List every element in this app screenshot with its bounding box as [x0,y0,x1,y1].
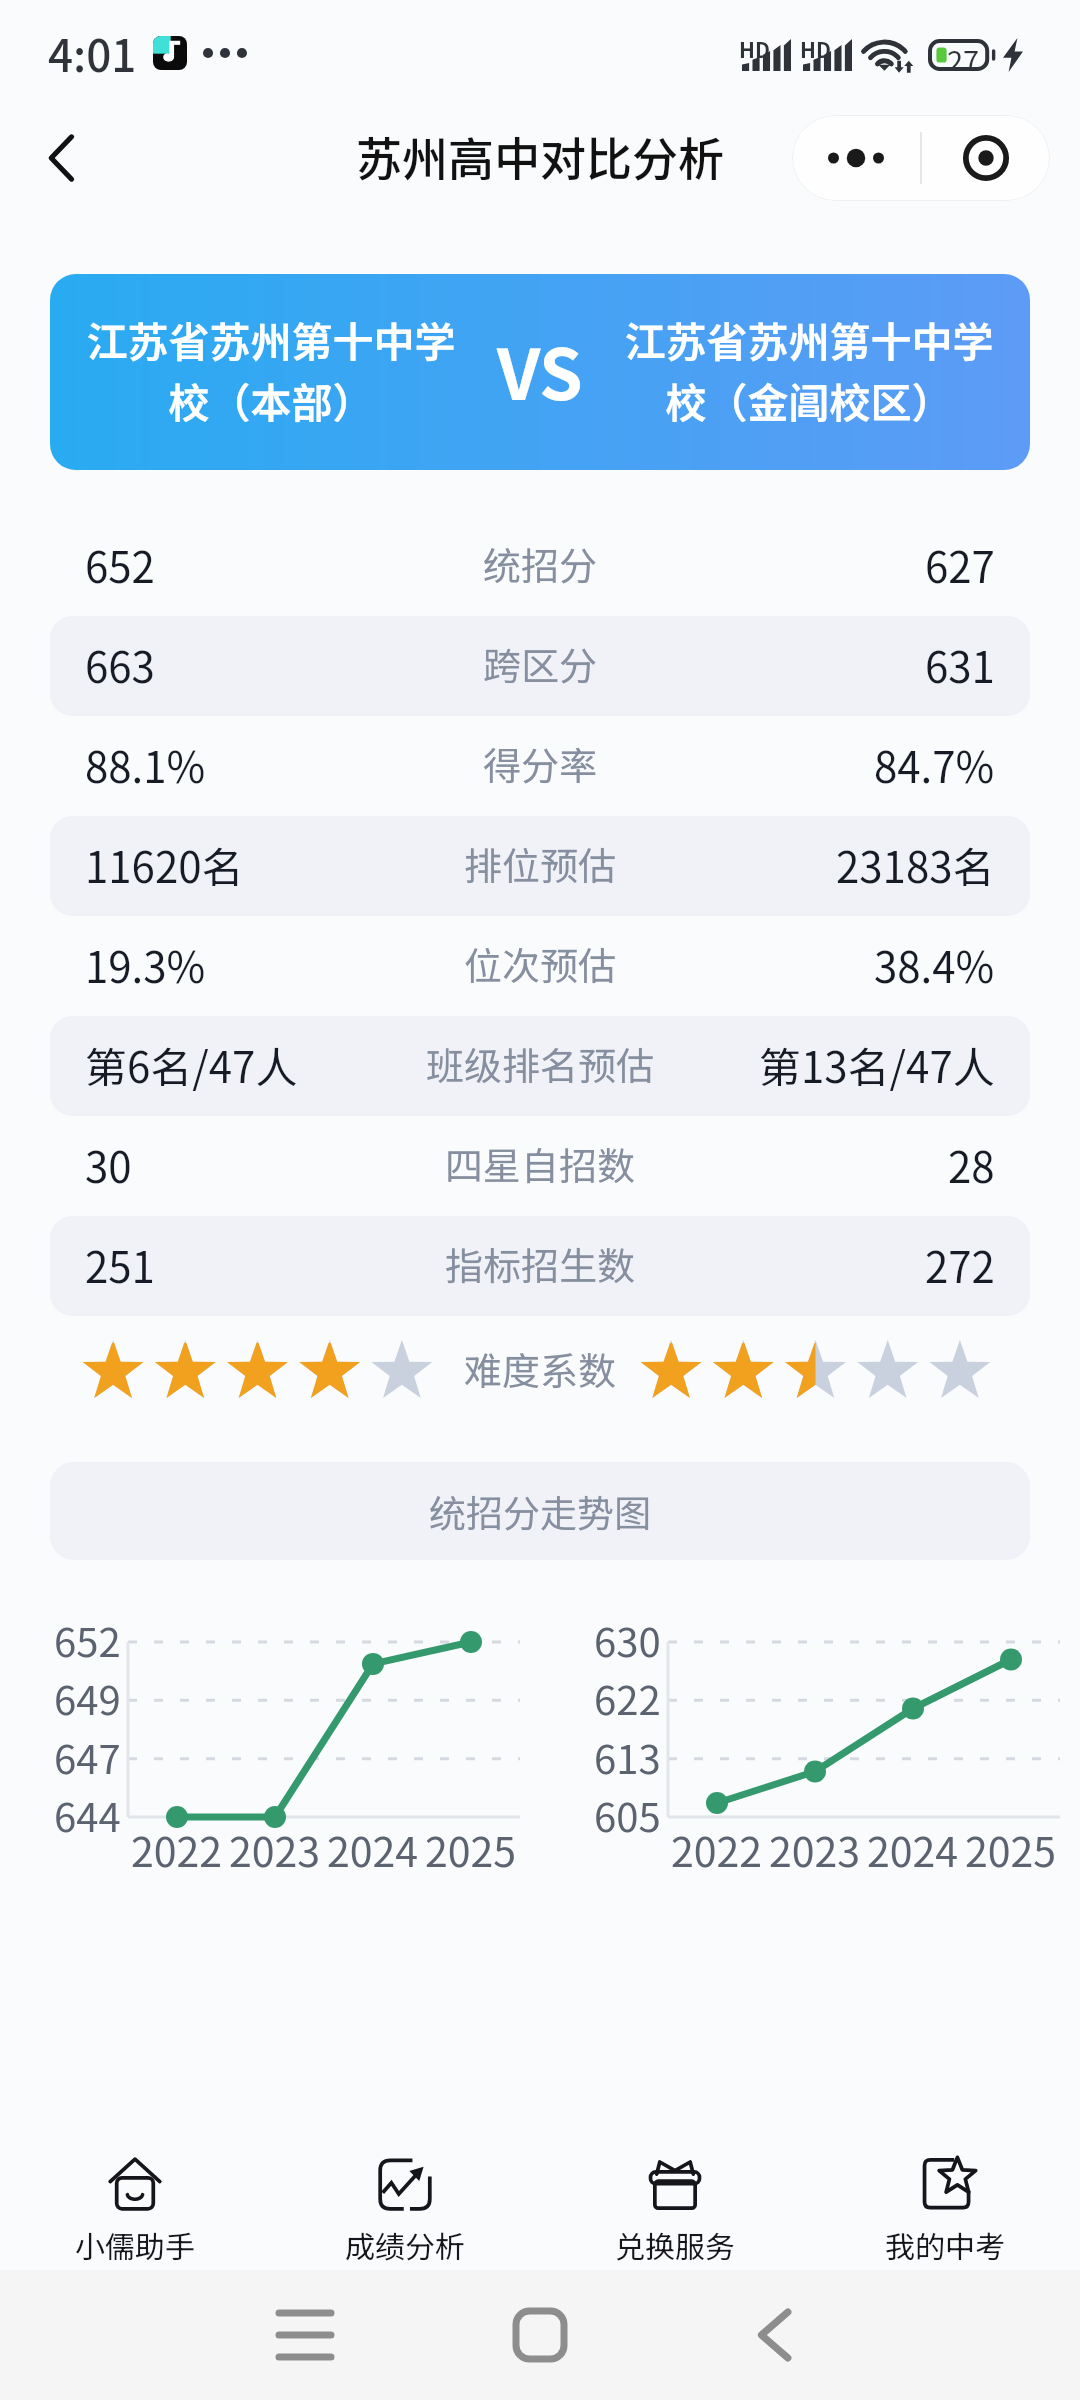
staticText: VS [497,319,583,420]
button[interactable]: 成绩分析 [270,2130,540,2270]
staticText: 19.3% [85,934,206,995]
staticText: 2024 [327,1819,419,1878]
staticText: 4:01 [48,21,137,85]
staticText: 663 [85,634,155,695]
button[interactable]: 第6名/47人 [50,1016,1030,1116]
staticText: 小儒助手 [75,2223,195,2266]
staticText: 272 [925,1234,995,1295]
staticText: 班级排名预估 [426,1036,655,1091]
staticText: 四星自招数 [445,1136,636,1191]
staticText: 630 [594,1611,661,1665]
button[interactable]: 19.3% [50,916,1030,1016]
staticText: 指标招生数 [445,1236,636,1291]
staticText: 2023 [769,1819,861,1878]
staticText: 得分率 [483,736,598,791]
staticText: 652 [54,1611,121,1665]
staticText: 统招分 [483,536,598,591]
button[interactable]: More options [792,115,1050,201]
button[interactable]: 兑换服务 [540,2130,810,2270]
staticText: 38.4% [874,934,995,995]
button[interactable]: 我的中考 [810,2130,1080,2270]
button[interactable]: Home [497,2292,583,2378]
staticText: 2022 [131,1819,223,1878]
staticText: 2025 [965,1819,1057,1878]
staticText: 江苏省苏州第十中学校（本部） [68,309,474,430]
button[interactable]: Recents [262,2292,348,2378]
staticText: 江苏省苏州第十中学校（金阊校区） [606,309,1012,430]
staticText: 11620名 [85,834,244,895]
staticText: 23183名 [836,834,995,895]
staticText: 27 [947,38,980,70]
staticText: 622 [594,1669,661,1723]
staticText: 613 [594,1728,661,1782]
staticText: 跨区分 [483,636,598,691]
staticText: 652 [85,534,155,595]
button[interactable]: Back [26,122,98,194]
staticText: 统招分走势图 [429,1484,651,1538]
staticText: 成绩分析 [345,2223,465,2266]
staticText: 2025 [425,1819,517,1878]
staticText: 2023 [229,1819,321,1878]
staticText: 627 [925,534,995,595]
button[interactable]: 江苏省苏州第十中学校（本部） [50,274,1030,470]
button[interactable]: 统招分走势图 [50,1462,1030,1560]
button[interactable]: Back [732,2292,818,2378]
staticText: 251 [85,1234,155,1295]
staticText: 排位预估 [464,836,617,891]
staticText: 第6名/47人 [85,1034,298,1095]
staticText: 84.7% [874,734,995,795]
button[interactable]: 652 [50,516,1030,616]
button[interactable]: 小儒助手 [0,2130,270,2270]
staticText: 我的中考 [885,2223,1005,2266]
staticText: 644 [54,1786,121,1840]
staticText: 2022 [671,1819,763,1878]
button[interactable]: 11620名 [50,816,1030,916]
staticText: 苏州高中对比分析 [356,123,724,190]
staticText: 605 [594,1786,661,1840]
button[interactable]: 251 [50,1216,1030,1316]
staticText: 第13名/47人 [759,1034,995,1095]
staticText: 位次预估 [464,936,617,991]
button[interactable]: 88.1% [50,716,1030,816]
staticText: 兑换服务 [615,2223,735,2266]
staticText: 2024 [867,1819,959,1878]
button[interactable]: 663 [50,616,1030,716]
staticText: 647 [54,1728,121,1782]
staticText: 631 [925,634,995,695]
button[interactable]: 30 [50,1116,1030,1216]
staticText: HD [800,34,831,64]
staticText: 649 [54,1669,121,1723]
staticText: 30 [85,1134,132,1195]
staticText: HD [739,34,770,64]
staticText: 28 [948,1134,995,1195]
staticText: 难度系数 [464,1341,617,1396]
staticText: 88.1% [85,734,206,795]
